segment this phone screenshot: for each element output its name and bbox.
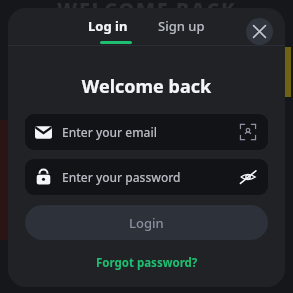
button[interactable]: Enter your password [25, 159, 268, 195]
button[interactable]: Forgot password? [88, 251, 206, 275]
staticText: Forgot password? [96, 255, 198, 271]
button[interactable]: Scan face [238, 122, 258, 142]
button[interactable]: Login [25, 205, 268, 240]
staticText: Sign up [158, 17, 205, 35]
staticText: Login [129, 214, 164, 232]
staticText: Welcome back [8, 74, 285, 99]
button[interactable]: Close [246, 18, 273, 45]
button[interactable]: Sign up [148, 13, 215, 39]
staticText: Log in [88, 17, 128, 35]
staticText: Enter your password [62, 169, 181, 185]
button[interactable]: Enter your email [25, 114, 268, 150]
staticText: WELCOME BACK [0, 0, 293, 23]
button[interactable]: Show password [238, 167, 258, 187]
staticText: Enter your email [62, 124, 157, 140]
button[interactable]: Log in [78, 13, 138, 39]
